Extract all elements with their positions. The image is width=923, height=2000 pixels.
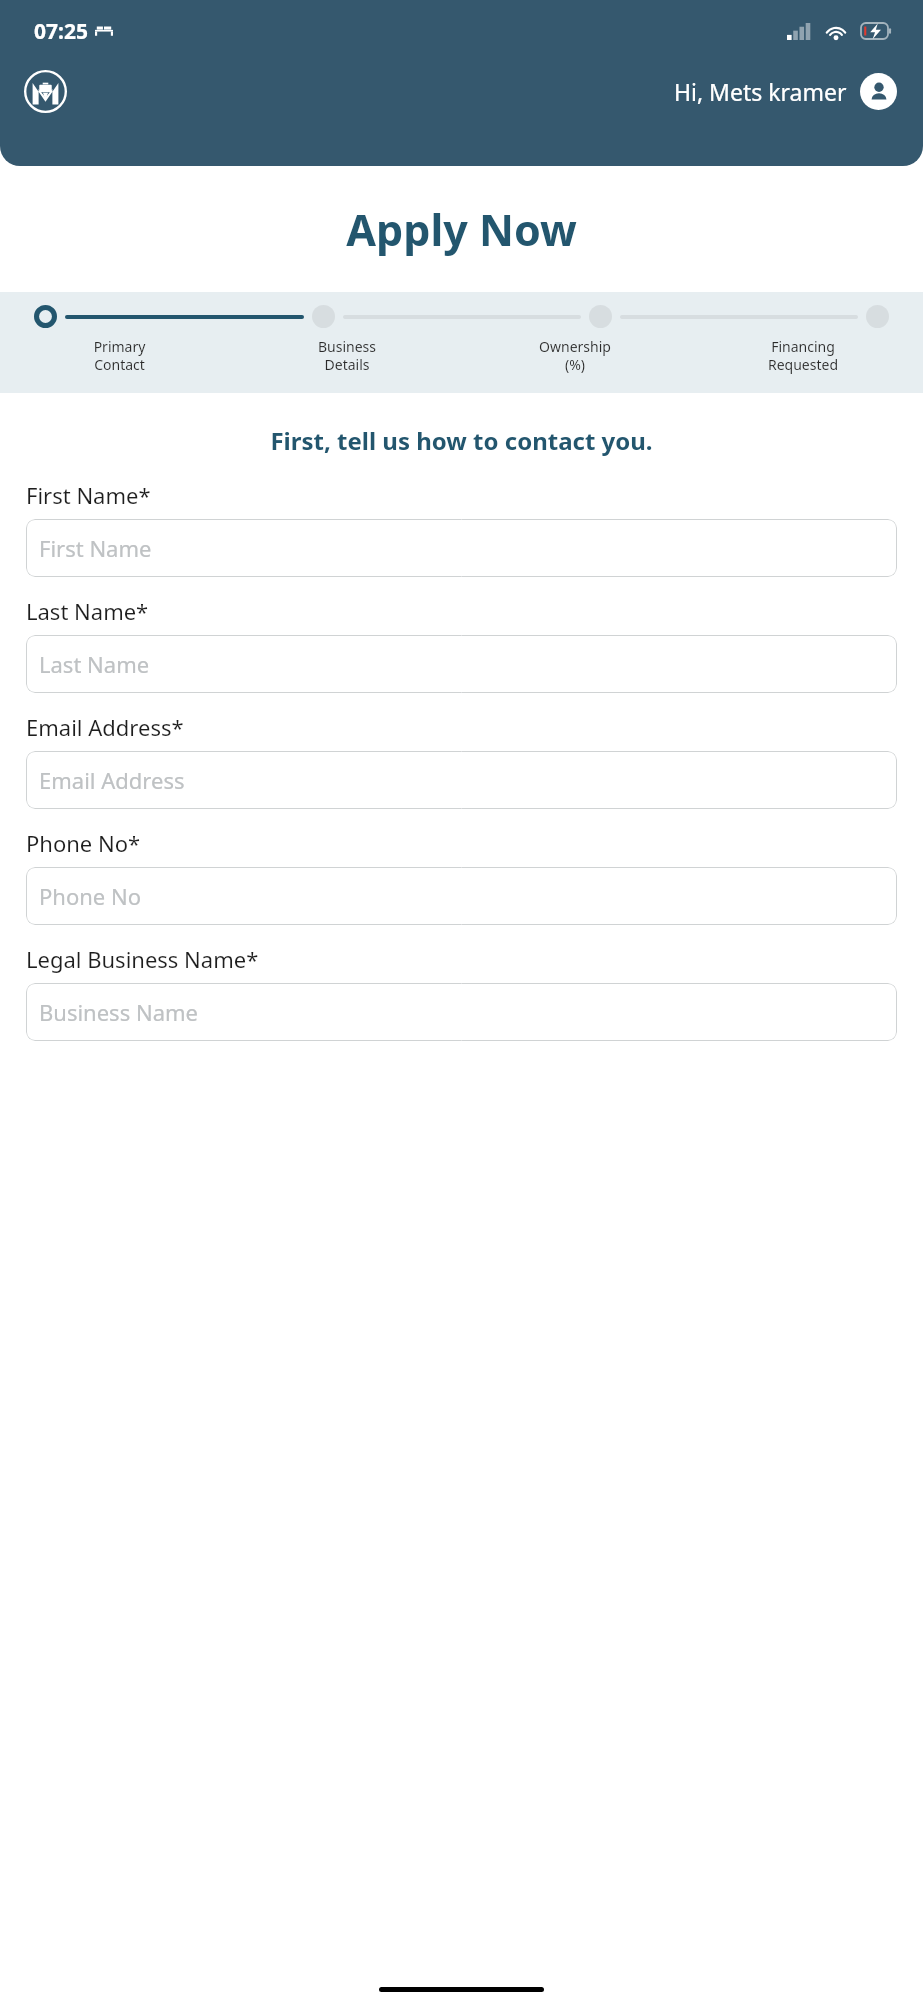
staticText: Email Address* [26,712,184,742]
staticText: Primary Contact [6,337,233,374]
staticText: First Name* [26,480,151,510]
button[interactable]: Account [860,73,897,110]
staticText: Last Name* [26,596,149,626]
staticText: First Name [39,533,152,563]
staticText: Business Name [39,997,198,1027]
button[interactable]: Phone No [26,867,897,925]
staticText: Ownership (%) [461,337,689,374]
staticText: Phone No [39,881,141,911]
button[interactable]: First Name [26,519,897,577]
staticText: Last Name [39,649,150,679]
staticText: Legal Business Name* [26,944,259,974]
staticText: Financing Requested [689,337,917,374]
staticText: 07:25 [34,17,88,46]
button[interactable]: Step 1 [34,305,57,328]
staticText: Email Address [39,765,185,795]
staticText: Phone No* [26,828,141,858]
staticText: Apply Now [0,200,923,259]
button[interactable]: Logo [24,70,67,113]
button[interactable]: Step 3 [589,305,612,328]
button[interactable]: Business Name [26,983,897,1041]
button[interactable]: Last Name [26,635,897,693]
button[interactable]: Step 4 [866,305,889,328]
button[interactable]: Email Address [26,751,897,809]
staticText: Business Details [233,337,461,374]
button[interactable]: Step 2 [312,305,335,328]
staticText: First, tell us how to contact you. [0,424,923,457]
staticText: Hi, Mets kramer [674,76,847,107]
